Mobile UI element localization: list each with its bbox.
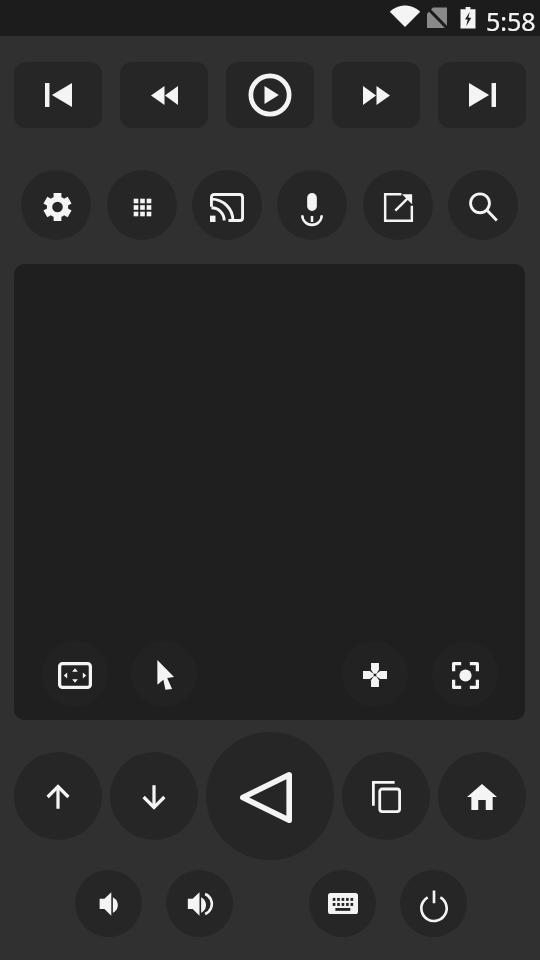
- staticText: 5:58: [486, 4, 536, 38]
- button[interactable]: Navigation pad: [42, 641, 108, 707]
- button[interactable]: Keyboard: [309, 870, 376, 937]
- button[interactable]: Scroll down: [110, 752, 198, 840]
- button[interactable]: Volume down: [75, 870, 142, 937]
- button[interactable]: Recents: [342, 752, 430, 840]
- button[interactable]: Back: [206, 732, 334, 860]
- button[interactable]: Cast: [192, 170, 262, 240]
- button[interactable]: Voice search: [277, 170, 347, 240]
- button[interactable]: Power: [400, 870, 467, 937]
- button[interactable]: Play: [226, 62, 314, 128]
- button[interactable]: Next: [438, 62, 526, 128]
- button[interactable]: Scroll up: [14, 752, 102, 840]
- button[interactable]: Search: [448, 170, 518, 240]
- button[interactable]: Home: [438, 752, 526, 840]
- button[interactable]: Select: [432, 641, 498, 707]
- button[interactable]: Touchpad: [14, 264, 525, 720]
- button[interactable]: Open app: [363, 170, 433, 240]
- button[interactable]: Fast forward: [332, 62, 420, 128]
- button[interactable]: Settings: [21, 170, 91, 240]
- button[interactable]: Previous: [14, 62, 102, 128]
- button[interactable]: Volume up: [166, 870, 233, 937]
- button[interactable]: Pointer: [131, 641, 197, 707]
- button[interactable]: Rewind: [120, 62, 208, 128]
- button[interactable]: Apps: [107, 170, 177, 240]
- button[interactable]: D-pad: [342, 641, 408, 707]
